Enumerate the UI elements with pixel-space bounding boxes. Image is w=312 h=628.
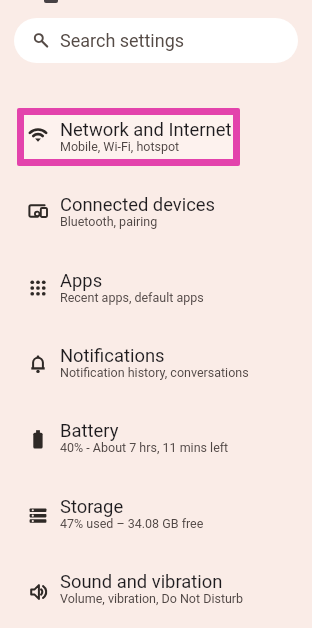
- button[interactable]: Sound and vibration: [0, 549, 312, 624]
- staticText: 40% - About 7 hrs, 11 mins left: [60, 440, 229, 455]
- staticText: Notifications: [60, 345, 165, 367]
- staticText: 47% used – 34.08 GB free: [60, 516, 204, 531]
- staticText: Connected devices: [60, 194, 216, 216]
- staticText: Notification history, conversations: [60, 365, 249, 380]
- button[interactable]: Battery: [0, 398, 312, 473]
- button[interactable]: Network and Internet: [0, 97, 312, 172]
- staticText: Volume, vibration, Do Not Disturb: [60, 591, 244, 606]
- button[interactable]: Storage: [0, 474, 312, 549]
- button[interactable]: Notifications: [0, 323, 312, 398]
- staticText: Search settings: [60, 30, 185, 51]
- button[interactable]: Apps: [0, 248, 312, 323]
- staticText: Storage: [60, 496, 124, 518]
- staticText: Battery: [60, 420, 119, 442]
- button[interactable]: Search settings: [14, 18, 298, 63]
- staticText: Apps: [60, 270, 103, 292]
- staticText: Bluetooth, pairing: [60, 214, 158, 229]
- staticText: Recent apps, default apps: [60, 290, 204, 305]
- button[interactable]: Connected devices: [0, 172, 312, 247]
- staticText: Sound and vibration: [60, 571, 223, 593]
- staticText: Network and Internet: [60, 119, 232, 141]
- staticText: Mobile, Wi-Fi, hotspot: [60, 139, 180, 154]
